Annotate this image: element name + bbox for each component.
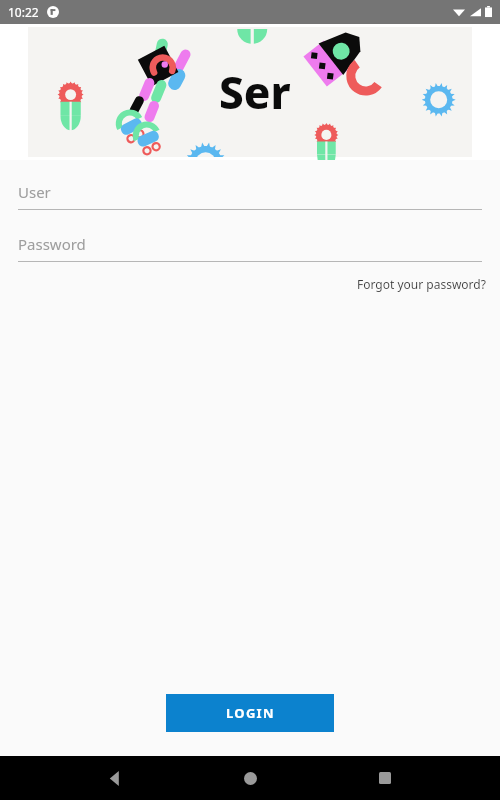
staticText: Forgot your password?: [357, 276, 486, 292]
staticText: 10:22: [8, 4, 39, 20]
staticText: Ser: [219, 62, 291, 122]
button[interactable]: Password: [0, 234, 500, 262]
button[interactable]: Forgot your password?: [343, 272, 500, 296]
button[interactable]: Recents: [365, 758, 405, 798]
button[interactable]: Home: [230, 758, 270, 798]
staticText: LOGIN: [226, 704, 275, 722]
staticText: Password: [18, 234, 86, 254]
button[interactable]: Back: [95, 758, 135, 798]
staticText: User: [18, 182, 51, 202]
button[interactable]: LOGIN: [166, 694, 334, 732]
button[interactable]: User: [0, 182, 500, 210]
